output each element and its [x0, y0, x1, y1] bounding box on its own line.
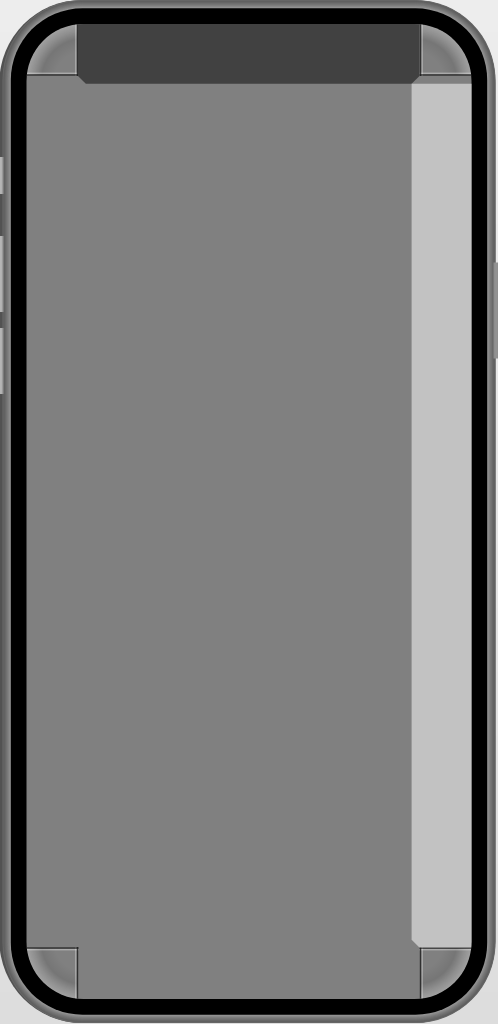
- button[interactable]: Phone device preview: [0, 0, 498, 1024]
